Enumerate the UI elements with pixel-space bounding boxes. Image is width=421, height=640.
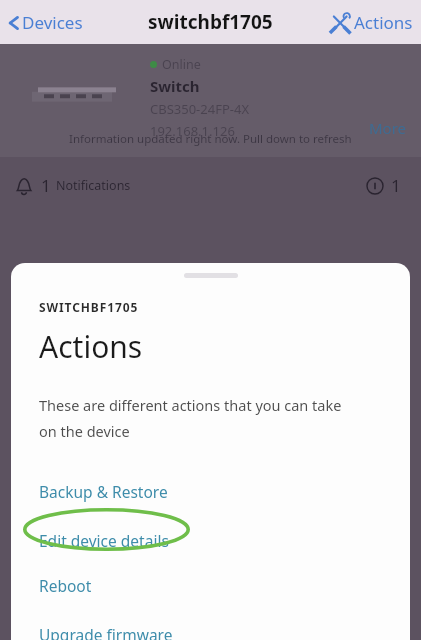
staticText: Reboot (39, 575, 92, 596)
staticText: 192.168.1.126 (150, 122, 235, 140)
staticText: CBS350-24FP-4X (150, 100, 250, 118)
staticText: Online (162, 56, 201, 73)
staticText: More (369, 118, 407, 138)
staticText: 1 (391, 174, 401, 197)
staticText: These are different actions that you can… (39, 395, 342, 415)
button[interactable]: Upgrade firmware (11, 619, 410, 640)
staticText: SWITCHBF1705 (39, 299, 139, 315)
staticText: 1 (41, 174, 51, 197)
button[interactable]: Devices (6, 11, 83, 34)
staticText: Actions (39, 326, 143, 367)
staticText: Backup & Restore (39, 481, 168, 502)
staticText: Notifications (56, 177, 131, 194)
button[interactable]: Backup & Restore (11, 476, 410, 506)
staticText: Devices (22, 11, 83, 34)
button[interactable]: Actions (329, 11, 413, 34)
staticText: Information updated right now. Pull down… (69, 131, 352, 147)
button[interactable]: Information count (366, 174, 401, 197)
button[interactable]: 1 (14, 174, 131, 197)
staticText: Switch (150, 76, 200, 96)
staticText: Upgrade firmware (39, 624, 173, 640)
staticText: switchbf1705 (148, 9, 273, 35)
staticText: Actions (354, 11, 413, 34)
button[interactable]: Edit device details (11, 525, 410, 555)
button[interactable]: Reboot (11, 570, 410, 600)
button[interactable]: More (369, 118, 407, 138)
staticText: Edit device details (39, 530, 169, 551)
staticText: on the device (39, 421, 130, 441)
